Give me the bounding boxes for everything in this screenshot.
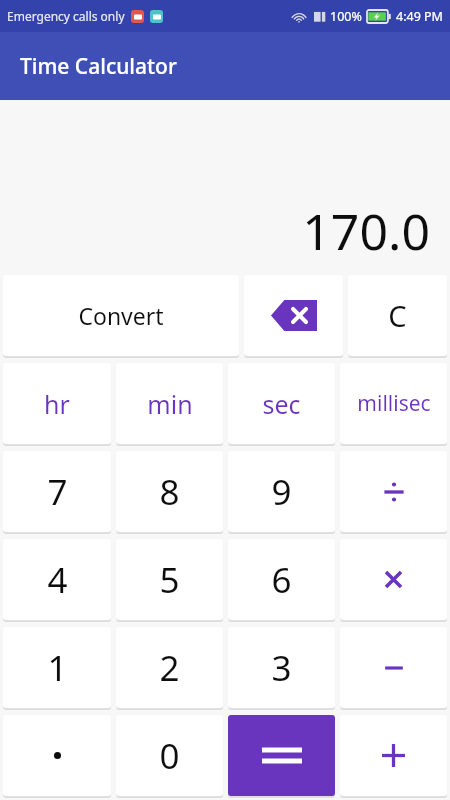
button[interactable]: Convert bbox=[3, 275, 239, 356]
button[interactable]: Minus bbox=[340, 627, 447, 708]
staticText: 2 bbox=[159, 644, 180, 692]
button[interactable]: millisec bbox=[340, 363, 447, 444]
staticText: 1 bbox=[47, 644, 68, 692]
button[interactable]: sec bbox=[228, 363, 335, 444]
button[interactable]: 3 bbox=[228, 627, 335, 708]
button[interactable]: 2 bbox=[116, 627, 223, 708]
button[interactable]: 6 bbox=[228, 539, 335, 620]
staticText: 170.0 bbox=[302, 197, 430, 265]
button[interactable]: C bbox=[348, 275, 447, 356]
staticText: 6 bbox=[271, 556, 292, 604]
button[interactable]: 9 bbox=[228, 451, 335, 532]
staticText: min bbox=[147, 387, 193, 421]
staticText: 7 bbox=[47, 468, 68, 516]
button[interactable]: 4 bbox=[3, 539, 111, 620]
staticText: 100% bbox=[330, 8, 362, 25]
button[interactable]: 8 bbox=[116, 451, 223, 532]
button[interactable]: 5 bbox=[116, 539, 223, 620]
staticText: 5 bbox=[159, 556, 180, 604]
staticText: 9 bbox=[271, 468, 292, 516]
staticText: 4 bbox=[47, 556, 68, 604]
button[interactable]: Decimal point bbox=[3, 715, 111, 796]
button[interactable]: min bbox=[116, 363, 223, 444]
staticText: 8 bbox=[159, 468, 180, 516]
staticText: C bbox=[388, 296, 407, 335]
staticText: 3 bbox=[271, 644, 292, 692]
button[interactable]: Divide bbox=[340, 451, 447, 532]
staticText: hr bbox=[44, 387, 70, 421]
button[interactable]: 0 bbox=[116, 715, 223, 796]
button[interactable]: Backspace bbox=[244, 275, 343, 356]
staticText: 4:49 PM bbox=[396, 8, 443, 25]
button[interactable]: Multiply bbox=[340, 539, 447, 620]
staticText: sec bbox=[262, 387, 301, 421]
staticText: Time Calculator bbox=[20, 52, 177, 81]
staticText: millisec bbox=[357, 389, 431, 418]
staticText: 0 bbox=[159, 732, 180, 780]
button[interactable]: Equals bbox=[228, 715, 335, 796]
button[interactable]: 7 bbox=[3, 451, 111, 532]
button[interactable]: hr bbox=[3, 363, 111, 444]
button[interactable]: 1 bbox=[3, 627, 111, 708]
staticText: Emergency calls only bbox=[7, 8, 125, 24]
button[interactable]: Plus bbox=[340, 715, 447, 796]
staticText: Convert bbox=[78, 300, 164, 331]
